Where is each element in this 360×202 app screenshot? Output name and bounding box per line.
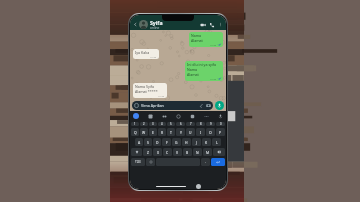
staticText: Alamat ***** <box>135 89 158 94</box>
button[interactable]: 1 <box>131 122 139 126</box>
button[interactable]: T <box>167 128 175 136</box>
staticText: B <box>186 150 189 155</box>
staticText: T <box>170 130 172 135</box>
button[interactable]: 5 <box>167 122 175 126</box>
staticText: V <box>176 150 179 155</box>
button[interactable]: I <box>196 128 205 136</box>
staticText: Nama <box>191 33 202 38</box>
button[interactable]: S <box>144 138 152 146</box>
staticText: Q <box>134 130 137 135</box>
button[interactable]: Iya Kaka <box>133 49 159 59</box>
button[interactable]: Q <box>131 128 139 136</box>
staticText: 12:46 <box>150 55 157 58</box>
staticText: D <box>156 140 159 145</box>
button[interactable]: Video call <box>200 22 206 28</box>
button[interactable]: Y <box>176 128 185 136</box>
other: Attach <box>199 103 204 108</box>
button[interactable]: M <box>203 148 212 156</box>
staticText: 8 <box>200 122 202 126</box>
button[interactable]: Voice input <box>218 114 223 119</box>
button[interactable]: ?123 <box>131 158 145 166</box>
staticText: L <box>216 140 218 145</box>
staticText: online <box>150 26 160 30</box>
staticText: E <box>152 130 154 135</box>
button[interactable]: N <box>193 148 202 156</box>
staticText: 4 <box>161 122 163 126</box>
staticText: Y <box>180 130 182 135</box>
staticText: C <box>166 150 169 155</box>
staticText: 0 <box>220 122 222 126</box>
staticText: Z <box>147 150 149 155</box>
button[interactable]: 9 <box>206 122 215 126</box>
button[interactable]: Z <box>143 148 152 156</box>
button[interactable]: Enter <box>211 158 225 166</box>
button[interactable]: Back <box>133 22 138 27</box>
staticText: N <box>196 150 199 155</box>
staticText: 6 <box>180 122 182 126</box>
staticText: Iya Kaka <box>135 50 150 55</box>
button[interactable]: Keyboard tool 1 <box>148 114 153 119</box>
button[interactable]: C <box>163 148 172 156</box>
staticText: X <box>157 150 159 155</box>
button[interactable]: Nama <box>189 32 223 47</box>
staticText: 12:46 <box>210 77 217 80</box>
button[interactable]: A <box>135 138 143 146</box>
staticText: 3 <box>152 122 154 126</box>
staticText: G <box>175 140 178 145</box>
button[interactable]: Nama Syifa <box>133 83 167 98</box>
button[interactable]: 6 <box>176 122 185 126</box>
button[interactable]: Keyboard tool 2 <box>162 114 167 119</box>
button[interactable]: Keyboard tool 5 <box>204 114 209 119</box>
button[interactable]: Ini dlu ini ya syifa <box>185 61 223 81</box>
button[interactable]: L <box>212 138 221 146</box>
staticText: K <box>205 140 208 145</box>
button[interactable]: 4 <box>158 122 166 126</box>
button[interactable]: More options <box>218 22 223 27</box>
button[interactable]: Key <box>131 148 142 156</box>
button[interactable]: B <box>183 148 192 156</box>
button[interactable]: E <box>149 128 157 136</box>
button[interactable]: J <box>192 138 201 146</box>
button[interactable]: H <box>182 138 191 146</box>
button[interactable]: Google <box>133 113 139 119</box>
button[interactable]: 0 <box>216 122 225 126</box>
button[interactable]: Profile photo <box>139 20 148 29</box>
button[interactable]: Emoji <box>132 101 213 110</box>
button[interactable]: F <box>162 138 171 146</box>
staticText: J <box>196 140 197 145</box>
button[interactable]: Keyboard tool 3 <box>176 114 181 119</box>
button[interactable]: X <box>153 148 162 156</box>
button[interactable]: Key <box>213 148 225 156</box>
staticText: U <box>189 130 192 135</box>
staticText: 12:46 <box>210 43 217 46</box>
button[interactable]: G <box>172 138 181 146</box>
button[interactable]: Syifa <box>150 19 200 30</box>
other: Camera <box>206 103 211 108</box>
button[interactable]: Keyboard tool 4 <box>190 114 195 119</box>
button[interactable]: K <box>202 138 211 146</box>
button[interactable]: 3 <box>149 122 157 126</box>
staticText: Syifa <box>150 19 163 26</box>
staticText: I <box>200 130 202 135</box>
staticText: M <box>206 150 210 155</box>
staticText: R <box>161 130 164 135</box>
button[interactable]: R <box>158 128 166 136</box>
button[interactable]: D <box>153 138 161 146</box>
button[interactable]: O <box>206 128 215 136</box>
button[interactable]: . <box>201 158 210 166</box>
staticText: W <box>142 130 146 135</box>
button[interactable]: V <box>173 148 182 156</box>
staticText: S <box>147 140 149 145</box>
button[interactable]: U <box>186 128 195 136</box>
button[interactable]: W <box>140 128 148 136</box>
button[interactable]: 8 <box>196 122 205 126</box>
button[interactable]: P <box>216 128 225 136</box>
button[interactable]: Voice message <box>215 101 224 110</box>
button[interactable]: 2 <box>140 122 148 126</box>
other: Emoji <box>134 103 139 108</box>
staticText: ?123 <box>135 160 141 164</box>
button[interactable]: Key <box>146 158 155 166</box>
button[interactable]: Voice call <box>209 22 215 28</box>
button[interactable]: 7 <box>186 122 195 126</box>
